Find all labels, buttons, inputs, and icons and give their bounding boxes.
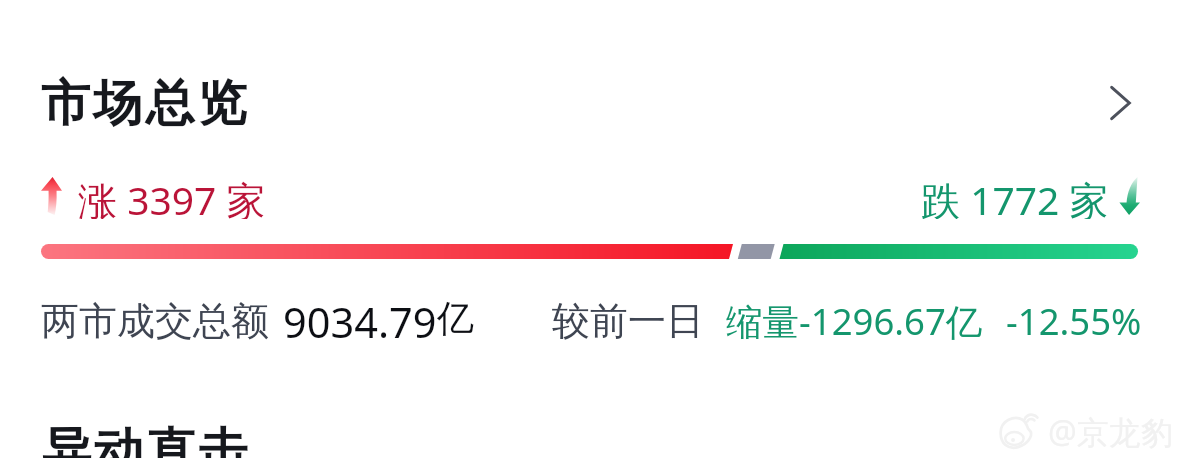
button[interactable]: 涨 3397 家 — [0, 173, 1177, 219]
staticText: 9034.79 — [283, 294, 437, 340]
staticText: @京龙豹 — [1048, 410, 1173, 454]
staticText: -12.55% — [1006, 296, 1142, 342]
staticText: 亿 — [437, 295, 474, 341]
staticText: 市场总览 — [41, 73, 250, 133]
button[interactable]: 市场总览 — [0, 73, 1177, 133]
button[interactable]: 两市成交总额 — [0, 297, 1177, 343]
staticText: 缩量-1296.67亿 — [726, 296, 983, 342]
staticText: 涨 3397 家 — [78, 173, 266, 219]
staticText: 跌 1772 家 — [921, 173, 1109, 219]
staticText: 异动直击 — [42, 421, 251, 458]
staticText: 两市成交总额 — [41, 297, 269, 343]
button[interactable]: 异动直击 — [0, 400, 1177, 458]
staticText: 较前一日 — [552, 297, 704, 343]
other: More — [1110, 86, 1131, 120]
